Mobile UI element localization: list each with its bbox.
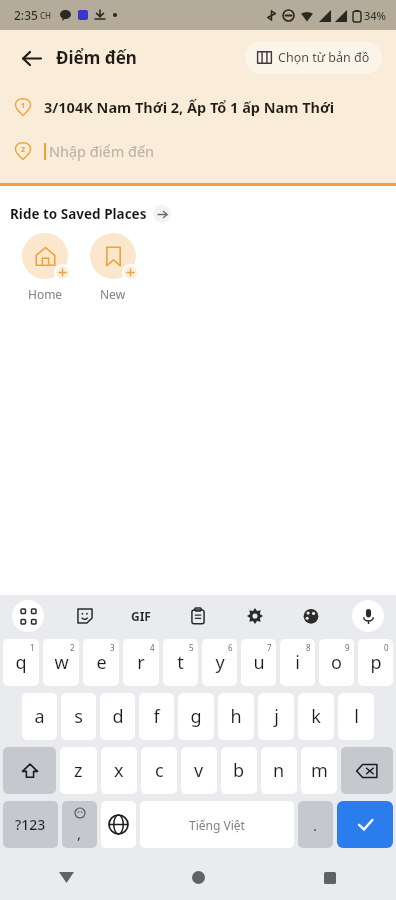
button[interactable]: p bbox=[358, 639, 393, 686]
button[interactable]: Shift bbox=[3, 747, 56, 794]
button[interactable]: Settings bbox=[239, 600, 271, 632]
button[interactable]: Voice input bbox=[352, 600, 384, 632]
staticText: q bbox=[15, 650, 27, 675]
staticText: 5 bbox=[189, 642, 194, 653]
button[interactable]: e bbox=[83, 639, 119, 686]
staticText: Ride to Saved Places bbox=[10, 205, 147, 223]
button[interactable]: Back bbox=[14, 41, 48, 75]
staticText: l bbox=[354, 704, 359, 729]
staticText: e bbox=[96, 650, 107, 675]
staticText: 1 bbox=[30, 642, 35, 653]
button[interactable]: a bbox=[22, 693, 57, 740]
staticText: d bbox=[112, 704, 124, 729]
button[interactable]: n bbox=[261, 747, 297, 794]
button[interactable]: Chọn từ bản đồ bbox=[245, 41, 382, 74]
staticText: Nhập điểm đến bbox=[49, 141, 155, 161]
button[interactable]: q bbox=[3, 639, 39, 686]
button[interactable]: b bbox=[221, 747, 257, 794]
staticText: . bbox=[313, 815, 318, 835]
button[interactable]: 1 bbox=[0, 85, 396, 129]
button[interactable]: Tiếng Việt bbox=[140, 801, 294, 848]
button[interactable]: t bbox=[163, 639, 198, 686]
staticText: 2 bbox=[70, 642, 75, 653]
staticText: c bbox=[155, 758, 164, 783]
button[interactable]: s bbox=[61, 693, 96, 740]
button[interactable]: u bbox=[241, 639, 276, 686]
staticText: f bbox=[153, 704, 160, 729]
staticText: g bbox=[190, 704, 202, 729]
button[interactable]: l bbox=[338, 693, 374, 740]
button[interactable]: f bbox=[139, 693, 174, 740]
staticText: Tiếng Việt bbox=[189, 817, 245, 833]
staticText: 2 bbox=[21, 145, 26, 155]
staticText: 2:35 bbox=[14, 7, 38, 23]
button[interactable]: New bbox=[90, 233, 136, 302]
staticText: , bbox=[77, 823, 82, 843]
staticText: 3 bbox=[110, 642, 115, 653]
staticText: i bbox=[295, 650, 300, 675]
button[interactable]: Clipboard bbox=[182, 600, 214, 632]
button[interactable]: 2 bbox=[0, 129, 396, 173]
button[interactable]: w bbox=[43, 639, 79, 686]
staticText: a bbox=[34, 704, 45, 729]
staticText: j bbox=[274, 704, 279, 729]
staticText: 6 bbox=[228, 642, 233, 653]
staticText: CH bbox=[40, 10, 52, 21]
button[interactable]: j bbox=[258, 693, 294, 740]
button[interactable]: i bbox=[280, 639, 315, 686]
staticText: 1 bbox=[21, 101, 26, 111]
staticText: p bbox=[370, 650, 382, 675]
staticText: v bbox=[194, 758, 204, 783]
button[interactable]: Backspace bbox=[341, 747, 393, 794]
staticText: ?123 bbox=[15, 815, 46, 834]
staticText: Chọn từ bản đồ bbox=[278, 49, 370, 66]
button[interactable]: Recents bbox=[264, 855, 396, 900]
staticText: y bbox=[215, 650, 225, 675]
staticText: 34% bbox=[364, 8, 386, 23]
button[interactable]: Change language bbox=[101, 801, 136, 848]
button[interactable]: Enter bbox=[337, 801, 393, 848]
staticText: 0 bbox=[384, 642, 389, 653]
button[interactable]: g bbox=[178, 693, 214, 740]
staticText: s bbox=[74, 704, 83, 729]
button[interactable]: h bbox=[218, 693, 254, 740]
button[interactable]: Home bbox=[132, 855, 264, 900]
button[interactable]: . bbox=[298, 801, 333, 848]
button[interactable]: o bbox=[319, 639, 354, 686]
button[interactable]: Apps bbox=[12, 600, 44, 632]
button[interactable]: ?123 bbox=[3, 801, 58, 848]
staticText: t bbox=[177, 650, 184, 675]
staticText: m bbox=[311, 758, 328, 783]
button[interactable]: k bbox=[298, 693, 334, 740]
staticText: 9 bbox=[345, 642, 350, 653]
staticText: 3/104K Nam Thới 2, Ấp Tổ 1 ấp Nam Thới bbox=[44, 97, 335, 117]
button[interactable]: Emoji and comma bbox=[62, 801, 97, 848]
staticText: w bbox=[54, 650, 69, 675]
button[interactable]: Ride to Saved Places bbox=[10, 205, 171, 223]
button[interactable]: r bbox=[123, 639, 159, 686]
staticText: GIF bbox=[131, 608, 151, 624]
staticText: b bbox=[233, 758, 245, 783]
staticText: k bbox=[311, 704, 321, 729]
staticText: 8 bbox=[306, 642, 311, 653]
button[interactable]: x bbox=[101, 747, 137, 794]
staticText: 7 bbox=[267, 642, 272, 653]
staticText: r bbox=[137, 650, 145, 675]
button[interactable]: c bbox=[141, 747, 177, 794]
staticText: 4 bbox=[150, 642, 155, 653]
button[interactable]: Sticker bbox=[69, 600, 101, 632]
button[interactable]: z bbox=[60, 747, 97, 794]
staticText: u bbox=[253, 650, 265, 675]
button[interactable]: Hide keyboard bbox=[0, 855, 132, 900]
button[interactable]: v bbox=[181, 747, 217, 794]
staticText: n bbox=[273, 758, 285, 783]
button[interactable]: y bbox=[202, 639, 237, 686]
staticText: New bbox=[100, 286, 126, 302]
button[interactable]: m bbox=[301, 747, 337, 794]
button[interactable]: Theme bbox=[295, 600, 327, 632]
button[interactable]: Home bbox=[22, 233, 68, 302]
button[interactable]: d bbox=[100, 693, 135, 740]
staticText: Điểm đến bbox=[56, 46, 137, 69]
button[interactable]: GIF bbox=[125, 600, 157, 632]
staticText: x bbox=[114, 758, 124, 783]
